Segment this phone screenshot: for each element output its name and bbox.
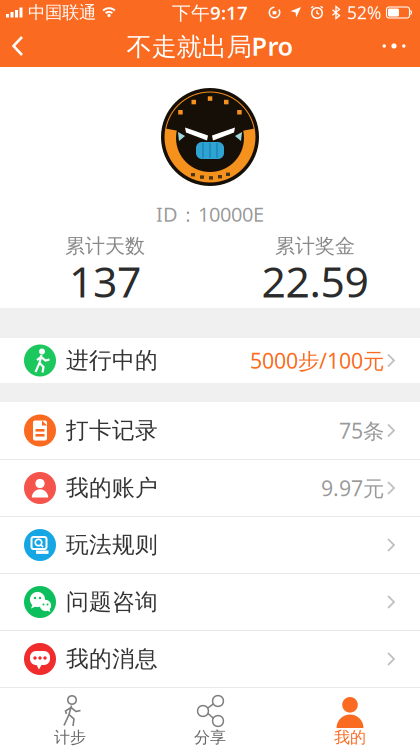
staticText: 累计奖金 (275, 234, 355, 258)
button[interactable]: 返回 (0, 25, 34, 67)
staticText: 我的账户 (66, 474, 158, 502)
button[interactable]: 打卡记录 (0, 402, 420, 459)
staticText: 我的消息 (66, 645, 158, 673)
button[interactable]: 分享 (140, 688, 280, 745)
button[interactable]: 更多 (372, 25, 420, 67)
staticText: 5000步/100元 (250, 346, 384, 375)
staticText: 不走就出局Pro (126, 29, 293, 63)
staticText: 玩法规则 (66, 531, 158, 559)
staticText: ID：10000E (156, 201, 264, 227)
button[interactable]: 计步 (0, 688, 140, 745)
staticText: 137 (69, 253, 141, 309)
staticText: 问题咨询 (66, 588, 158, 616)
button[interactable]: 问题咨询 (0, 574, 420, 630)
staticText: 75条 (339, 416, 384, 445)
button[interactable]: 进行中的 (0, 338, 420, 383)
staticText: 中国联通 (28, 2, 96, 23)
staticText: 52% (347, 1, 381, 24)
button[interactable]: 我的 (280, 688, 420, 745)
staticText: 我的 (334, 728, 366, 747)
staticText: 累计天数 (65, 234, 145, 258)
button[interactable]: 我的消息 (0, 631, 420, 687)
staticText: 9.97元 (321, 474, 384, 502)
staticText: 计步 (54, 728, 86, 747)
staticText: 下午9:17 (172, 0, 248, 25)
staticText: 打卡记录 (66, 417, 158, 444)
button[interactable]: 我的账户 (0, 460, 420, 516)
staticText: 22.59 (261, 253, 368, 309)
staticText: 进行中的 (66, 347, 158, 374)
staticText: 分享 (194, 728, 226, 747)
button[interactable]: 玩法规则 (0, 517, 420, 573)
